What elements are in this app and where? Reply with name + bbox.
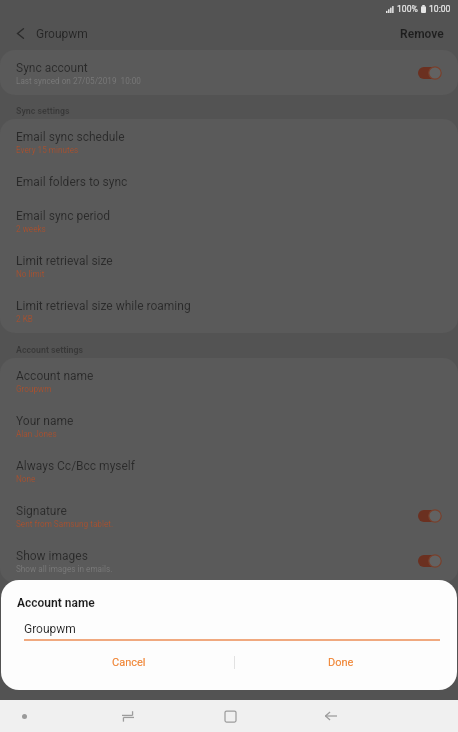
staticText: Cancel: [112, 656, 146, 669]
button[interactable]: Back: [313, 700, 349, 732]
button[interactable]: Account name: [0, 358, 458, 403]
staticText: Groupwm: [24, 622, 76, 636]
button[interactable]: Hide keyboard: [6, 700, 42, 732]
button[interactable]: Limit retrieval size: [0, 243, 458, 288]
staticText: Account name: [17, 596, 95, 610]
staticText: Alan Jones: [16, 429, 57, 439]
button[interactable]: Cancel: [23, 648, 234, 676]
staticText: 2 KB: [16, 314, 33, 324]
staticText: Sync account: [16, 61, 88, 75]
staticText: Sent from Samsung tablet.: [16, 519, 114, 529]
button[interactable]: Always Cc/Bcc myself: [0, 448, 458, 493]
staticText: Show images: [16, 549, 88, 563]
button[interactable]: Email folders to sync: [0, 164, 458, 198]
button[interactable]: Recent apps: [110, 700, 146, 732]
staticText: Email sync period: [16, 209, 111, 223]
staticText: Last synced on 27/05/2019 10:00: [16, 76, 141, 86]
button[interactable]: Home: [212, 700, 248, 732]
button[interactable]: Your name: [0, 403, 458, 448]
staticText: Limit retrieval size: [16, 254, 113, 268]
staticText: 10:00: [429, 4, 451, 14]
staticText: Email folders to sync: [16, 175, 128, 189]
button[interactable]: Email sync period: [0, 198, 458, 243]
button[interactable]: Done: [235, 648, 447, 676]
button[interactable]: Navigate up: [0, 18, 40, 50]
staticText: Your name: [16, 414, 74, 428]
staticText: Every 15 minutes: [16, 145, 79, 155]
staticText: Remove: [400, 27, 444, 41]
staticText: No limit: [16, 269, 45, 279]
staticText: Email sync schedule: [16, 130, 125, 144]
staticText: Show all images in emails.: [16, 564, 113, 574]
button[interactable]: Remove: [384, 20, 458, 48]
staticText: Limit retrieval size while roaming: [16, 299, 191, 313]
staticText: Account settings: [16, 345, 84, 355]
button[interactable]: Limit retrieval size while roaming: [0, 288, 458, 333]
button[interactable]: Show images: [0, 538, 458, 583]
staticText: Always Cc/Bcc myself: [16, 459, 135, 473]
button[interactable]: Toggle: [418, 509, 442, 523]
staticText: Account name: [16, 369, 94, 383]
staticText: Sync settings: [16, 106, 70, 116]
button[interactable]: Sync account: [0, 50, 458, 95]
button[interactable]: Signature: [0, 493, 458, 538]
staticText: Groupwm: [36, 27, 88, 41]
staticText: Done: [328, 656, 354, 669]
staticText: 2 weeks: [16, 224, 46, 234]
staticText: 100%: [397, 4, 418, 14]
staticText: Groupwm: [16, 384, 52, 394]
button[interactable]: Toggle: [418, 554, 442, 568]
button[interactable]: Toggle: [418, 66, 442, 80]
button[interactable]: Email sync schedule: [0, 119, 458, 164]
staticText: None: [16, 474, 36, 484]
staticText: Signature: [16, 504, 67, 518]
